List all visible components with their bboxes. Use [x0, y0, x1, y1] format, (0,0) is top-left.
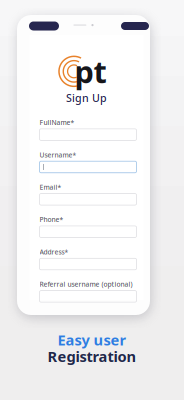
- staticText: Registration: [47, 346, 136, 366]
- staticText: Sign Up: [66, 91, 107, 105]
- button[interactable]: Username*: [39, 150, 136, 173]
- staticText: Email*: [39, 183, 61, 192]
- staticText: Referral username (optional): [39, 280, 132, 289]
- staticText: Phone*: [39, 215, 63, 224]
- button[interactable]: Email*: [39, 183, 136, 205]
- staticText: pt: [74, 51, 106, 92]
- staticText: Address*: [39, 247, 68, 256]
- button[interactable]: Phone*: [39, 215, 136, 237]
- button[interactable]: Address*: [39, 247, 136, 270]
- button[interactable]: Referral username (optional): [39, 280, 136, 302]
- staticText: FullName*: [39, 118, 74, 127]
- button[interactable]: FullName*: [39, 118, 136, 140]
- staticText: Easy user: [57, 330, 126, 349]
- staticText: Username*: [39, 150, 76, 159]
